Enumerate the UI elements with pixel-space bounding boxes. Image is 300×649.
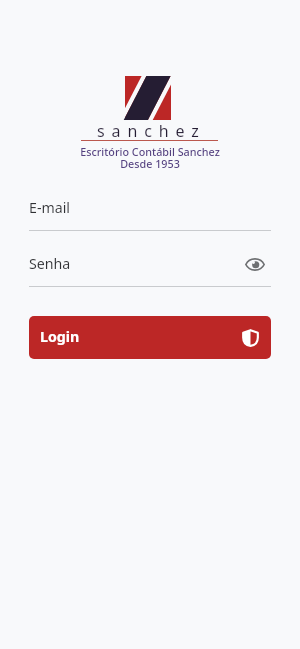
staticText: E-mail: [29, 198, 71, 217]
button[interactable]: Mostrar senha: [242, 252, 268, 277]
button[interactable]: E-mail: [29, 198, 271, 231]
staticText: sanchez: [97, 120, 206, 142]
button[interactable]: Senha: [29, 254, 271, 287]
staticText: Escritório Contábil Sanchez Desde 1953: [0, 144, 300, 172]
staticText: Login: [40, 327, 80, 346]
staticText: Senha: [29, 254, 71, 273]
button[interactable]: Login: [29, 316, 271, 359]
